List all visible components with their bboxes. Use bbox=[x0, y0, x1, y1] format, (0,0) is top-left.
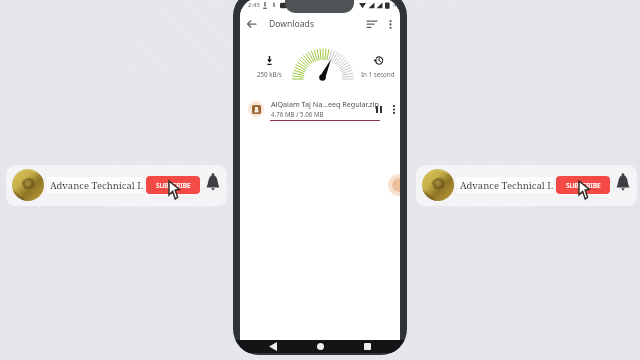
button[interactable]: SUBSCRIBE bbox=[556, 176, 610, 194]
button[interactable]: SUBSCRIBE bbox=[146, 176, 200, 194]
button[interactable]: Notifications bbox=[612, 172, 633, 193]
button[interactable]: Home bbox=[311, 340, 329, 353]
staticText: SUBSCRIBE bbox=[566, 181, 601, 190]
button[interactable]: Notifications bbox=[202, 172, 223, 193]
button[interactable]: AlQalam Taj Na…eeq Regular.zip bbox=[244, 95, 396, 127]
staticText: 250 kB/s bbox=[257, 70, 282, 78]
staticText: AlQalam Taj Na…eeq Regular.zip bbox=[271, 99, 379, 109]
staticText: 41% bbox=[393, 1, 400, 8]
button[interactable]: Recents bbox=[358, 340, 376, 353]
button[interactable]: More options bbox=[382, 16, 398, 32]
button[interactable]: Back bbox=[243, 16, 259, 32]
button[interactable]: Advance Technical I… bbox=[6, 165, 227, 206]
staticText: SUBSCRIBE bbox=[156, 181, 191, 190]
button[interactable]: More bbox=[387, 102, 400, 116]
staticText: In 1 second bbox=[361, 70, 395, 78]
button[interactable]: Sort bbox=[364, 16, 380, 32]
button[interactable]: Advance Technical I… bbox=[416, 165, 637, 206]
button[interactable]: Pause bbox=[372, 102, 386, 116]
staticText: Downloads bbox=[269, 18, 315, 30]
staticText: Advance Technical I… bbox=[460, 179, 553, 192]
staticText: Advance Technical I… bbox=[50, 179, 143, 192]
staticText: 2:45 bbox=[248, 1, 260, 9]
staticText: 4.76 MB / 5.06 MB bbox=[271, 110, 324, 118]
button[interactable]: Back bbox=[264, 340, 282, 353]
